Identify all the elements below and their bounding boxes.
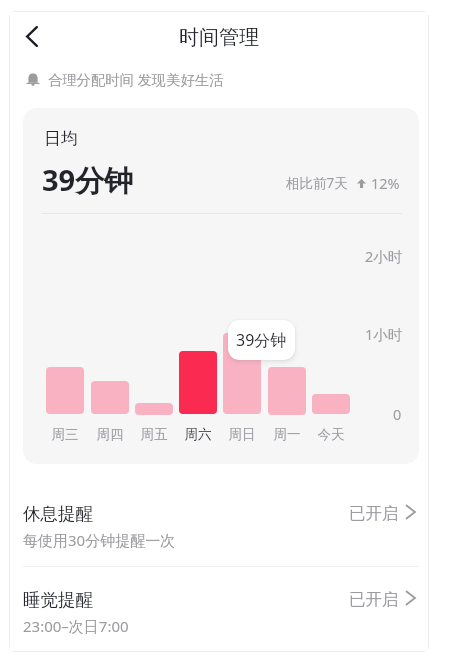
staticText: 合理分配时间 发现美好生活 [48,70,224,90]
staticText: 已开启 [349,503,399,524]
button[interactable]: 休息提醒 [23,492,419,554]
staticText: 1小时 [365,324,403,344]
button[interactable]: 睡觉提醒 [23,578,419,640]
button[interactable]: Back [10,14,54,58]
staticText: 周六 [179,426,217,443]
staticText: 周日 [223,426,261,443]
staticText: 周五 [135,426,173,443]
staticText: 时间管理 [9,25,429,50]
staticText: 休息提醒 [23,503,93,525]
staticText: 已开启 [349,589,399,610]
staticText: 39分钟 [42,160,134,200]
staticText: 今天 [312,426,350,443]
staticText: 0 [393,404,402,424]
staticText: 日均 [44,128,78,149]
staticText: 相比前7天 [286,174,348,192]
staticText: 睡觉提醒 [23,589,93,611]
staticText: 周三 [46,426,84,443]
staticText: 周四 [91,426,129,443]
staticText: 23:00–次日7:00 [23,616,129,636]
staticText: 每使用30分钟提醒一次 [23,530,176,550]
staticText: 周一 [268,426,306,443]
staticText: 39分钟 [236,329,287,351]
staticText: 12% [371,173,400,193]
staticText: 2小时 [365,246,403,266]
